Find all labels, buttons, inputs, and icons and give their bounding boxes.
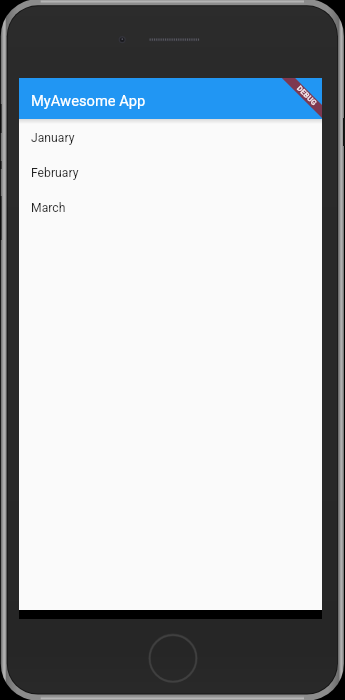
staticText: DEBUG [295,84,319,108]
staticText: March [31,201,66,215]
button[interactable]: March [19,189,322,224]
button[interactable]: January [19,119,322,154]
staticText: January [31,131,75,145]
staticText: MyAwesome App [31,92,146,109]
staticText: February [31,166,79,180]
button[interactable]: February [19,154,322,189]
button[interactable]: MyAwesome App [19,78,322,119]
